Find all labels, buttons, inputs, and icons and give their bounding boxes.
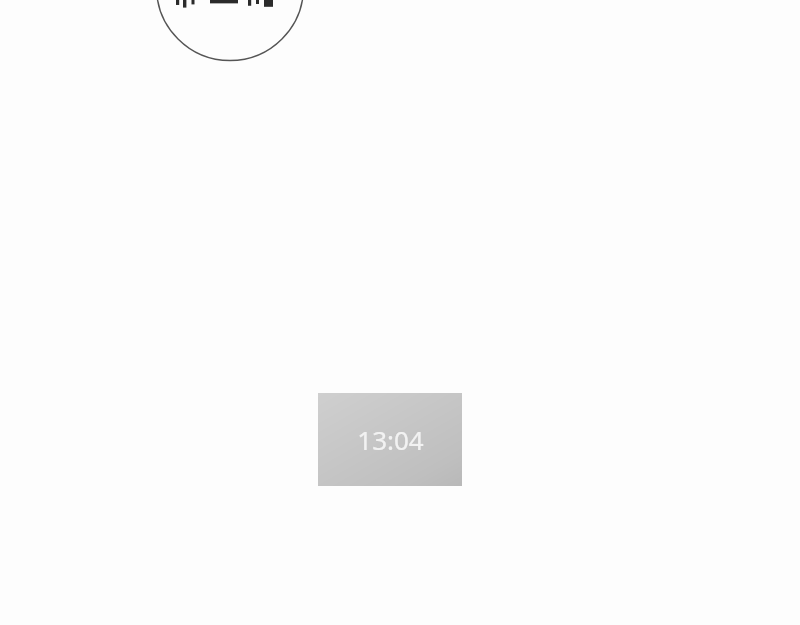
button[interactable]: 13:04: [318, 393, 462, 486]
staticText: 13:04: [357, 422, 424, 457]
